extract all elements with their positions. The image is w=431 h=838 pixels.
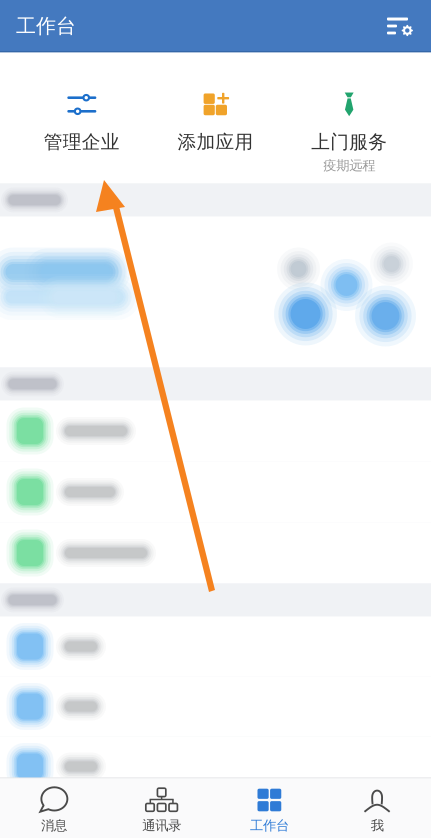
button[interactable]	[0, 736, 431, 796]
staticText: 消息	[41, 817, 67, 834]
staticText: 疫期远程	[323, 157, 375, 174]
button[interactable]: 我	[323, 778, 431, 838]
button[interactable]	[0, 461, 431, 522]
staticText: 工作台	[16, 14, 76, 38]
button[interactable]	[0, 616, 431, 676]
button[interactable]: 添加应用	[149, 91, 282, 183]
staticText: 管理企业	[44, 130, 120, 153]
staticText: 添加应用	[177, 130, 253, 153]
button[interactable]: 管理	[375, 5, 425, 47]
button[interactable]	[0, 522, 431, 583]
button[interactable]: 管理企业	[15, 91, 149, 183]
staticText: 工作台	[250, 817, 289, 834]
staticText: 上门服务	[311, 130, 387, 153]
button[interactable]	[0, 676, 431, 736]
staticText: 通讯录	[142, 817, 181, 834]
button[interactable]: 消息	[0, 778, 108, 838]
button[interactable]: 工作台	[215, 778, 323, 838]
button[interactable]: 通讯录	[108, 778, 216, 838]
staticText: 我	[371, 817, 384, 834]
button[interactable]	[0, 400, 431, 461]
button[interactable]: 上门服务	[282, 91, 416, 183]
